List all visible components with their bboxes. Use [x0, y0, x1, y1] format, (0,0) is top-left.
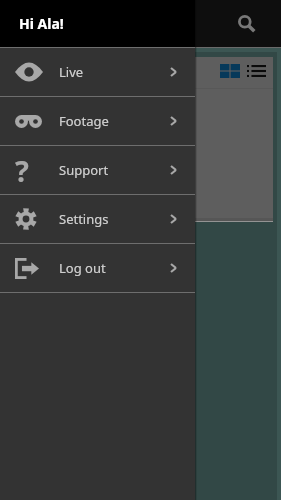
button[interactable]: Live: [0, 48, 195, 96]
button[interactable]: Grid view: [217, 60, 243, 82]
staticText: Support: [59, 161, 109, 179]
button[interactable]: Log out: [0, 244, 195, 292]
staticText: Hi Ala!: [19, 14, 64, 33]
button[interactable]: Footage: [0, 97, 195, 145]
staticText: Log out: [59, 259, 106, 277]
button[interactable]: ?: [0, 146, 195, 194]
staticText: ?: [15, 151, 29, 190]
staticText: Live: [59, 63, 84, 81]
staticText: Settings: [59, 210, 109, 228]
button[interactable]: Settings: [0, 195, 195, 243]
staticText: Footage: [59, 112, 109, 130]
button[interactable]: Search: [230, 7, 264, 41]
button[interactable]: List view: [243, 60, 269, 82]
